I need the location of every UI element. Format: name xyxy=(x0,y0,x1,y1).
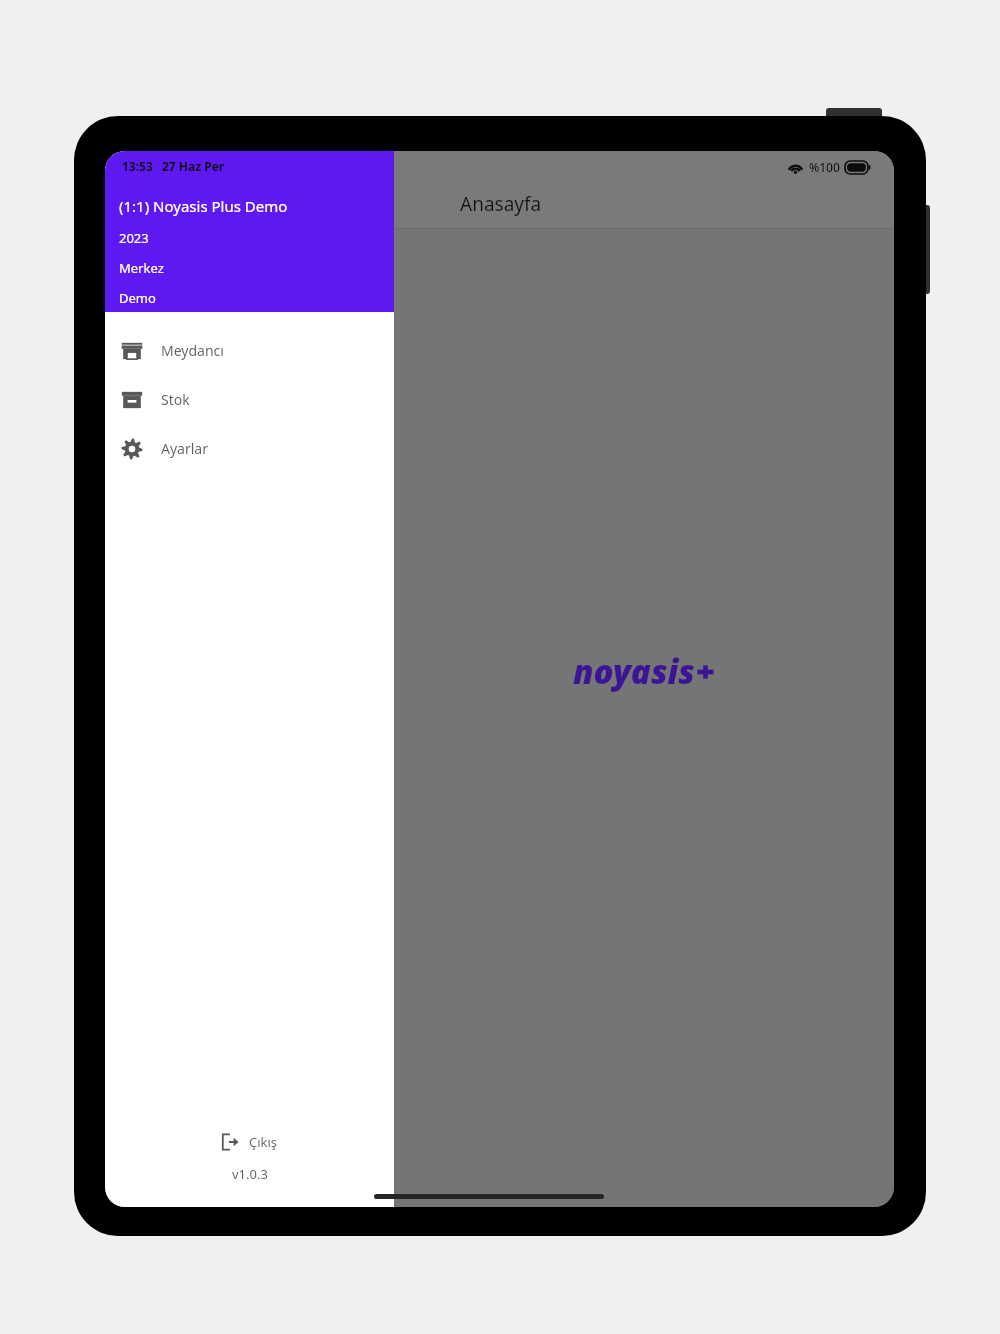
button[interactable]: Ayarlar xyxy=(105,424,394,473)
staticText: 27 Haz Per xyxy=(162,158,225,174)
button[interactable]: Meydancı xyxy=(105,326,394,375)
staticText: Demo xyxy=(119,289,156,307)
staticText: 13:53 xyxy=(122,158,153,174)
staticText: Merkez xyxy=(119,259,164,277)
staticText: 2023 xyxy=(119,229,149,247)
staticText: (1:1) Noyasis Plus Demo xyxy=(119,196,288,216)
button[interactable]: Stok xyxy=(105,375,394,424)
staticText: Anasayfa xyxy=(460,191,542,217)
other: Meydancı xyxy=(121,340,143,362)
staticText: v1.0.3 xyxy=(232,1165,268,1183)
button[interactable]: Çıkış xyxy=(209,1127,290,1157)
other: Ayarlar xyxy=(121,438,143,460)
staticText: %100 xyxy=(809,159,840,175)
staticText: noyasis xyxy=(573,649,695,694)
staticText: Çıkış xyxy=(249,1133,278,1151)
staticText: Ayarlar xyxy=(161,439,208,458)
other: Stok xyxy=(121,389,143,411)
staticText: Stok xyxy=(161,390,190,409)
staticText: Meydancı xyxy=(161,341,224,360)
